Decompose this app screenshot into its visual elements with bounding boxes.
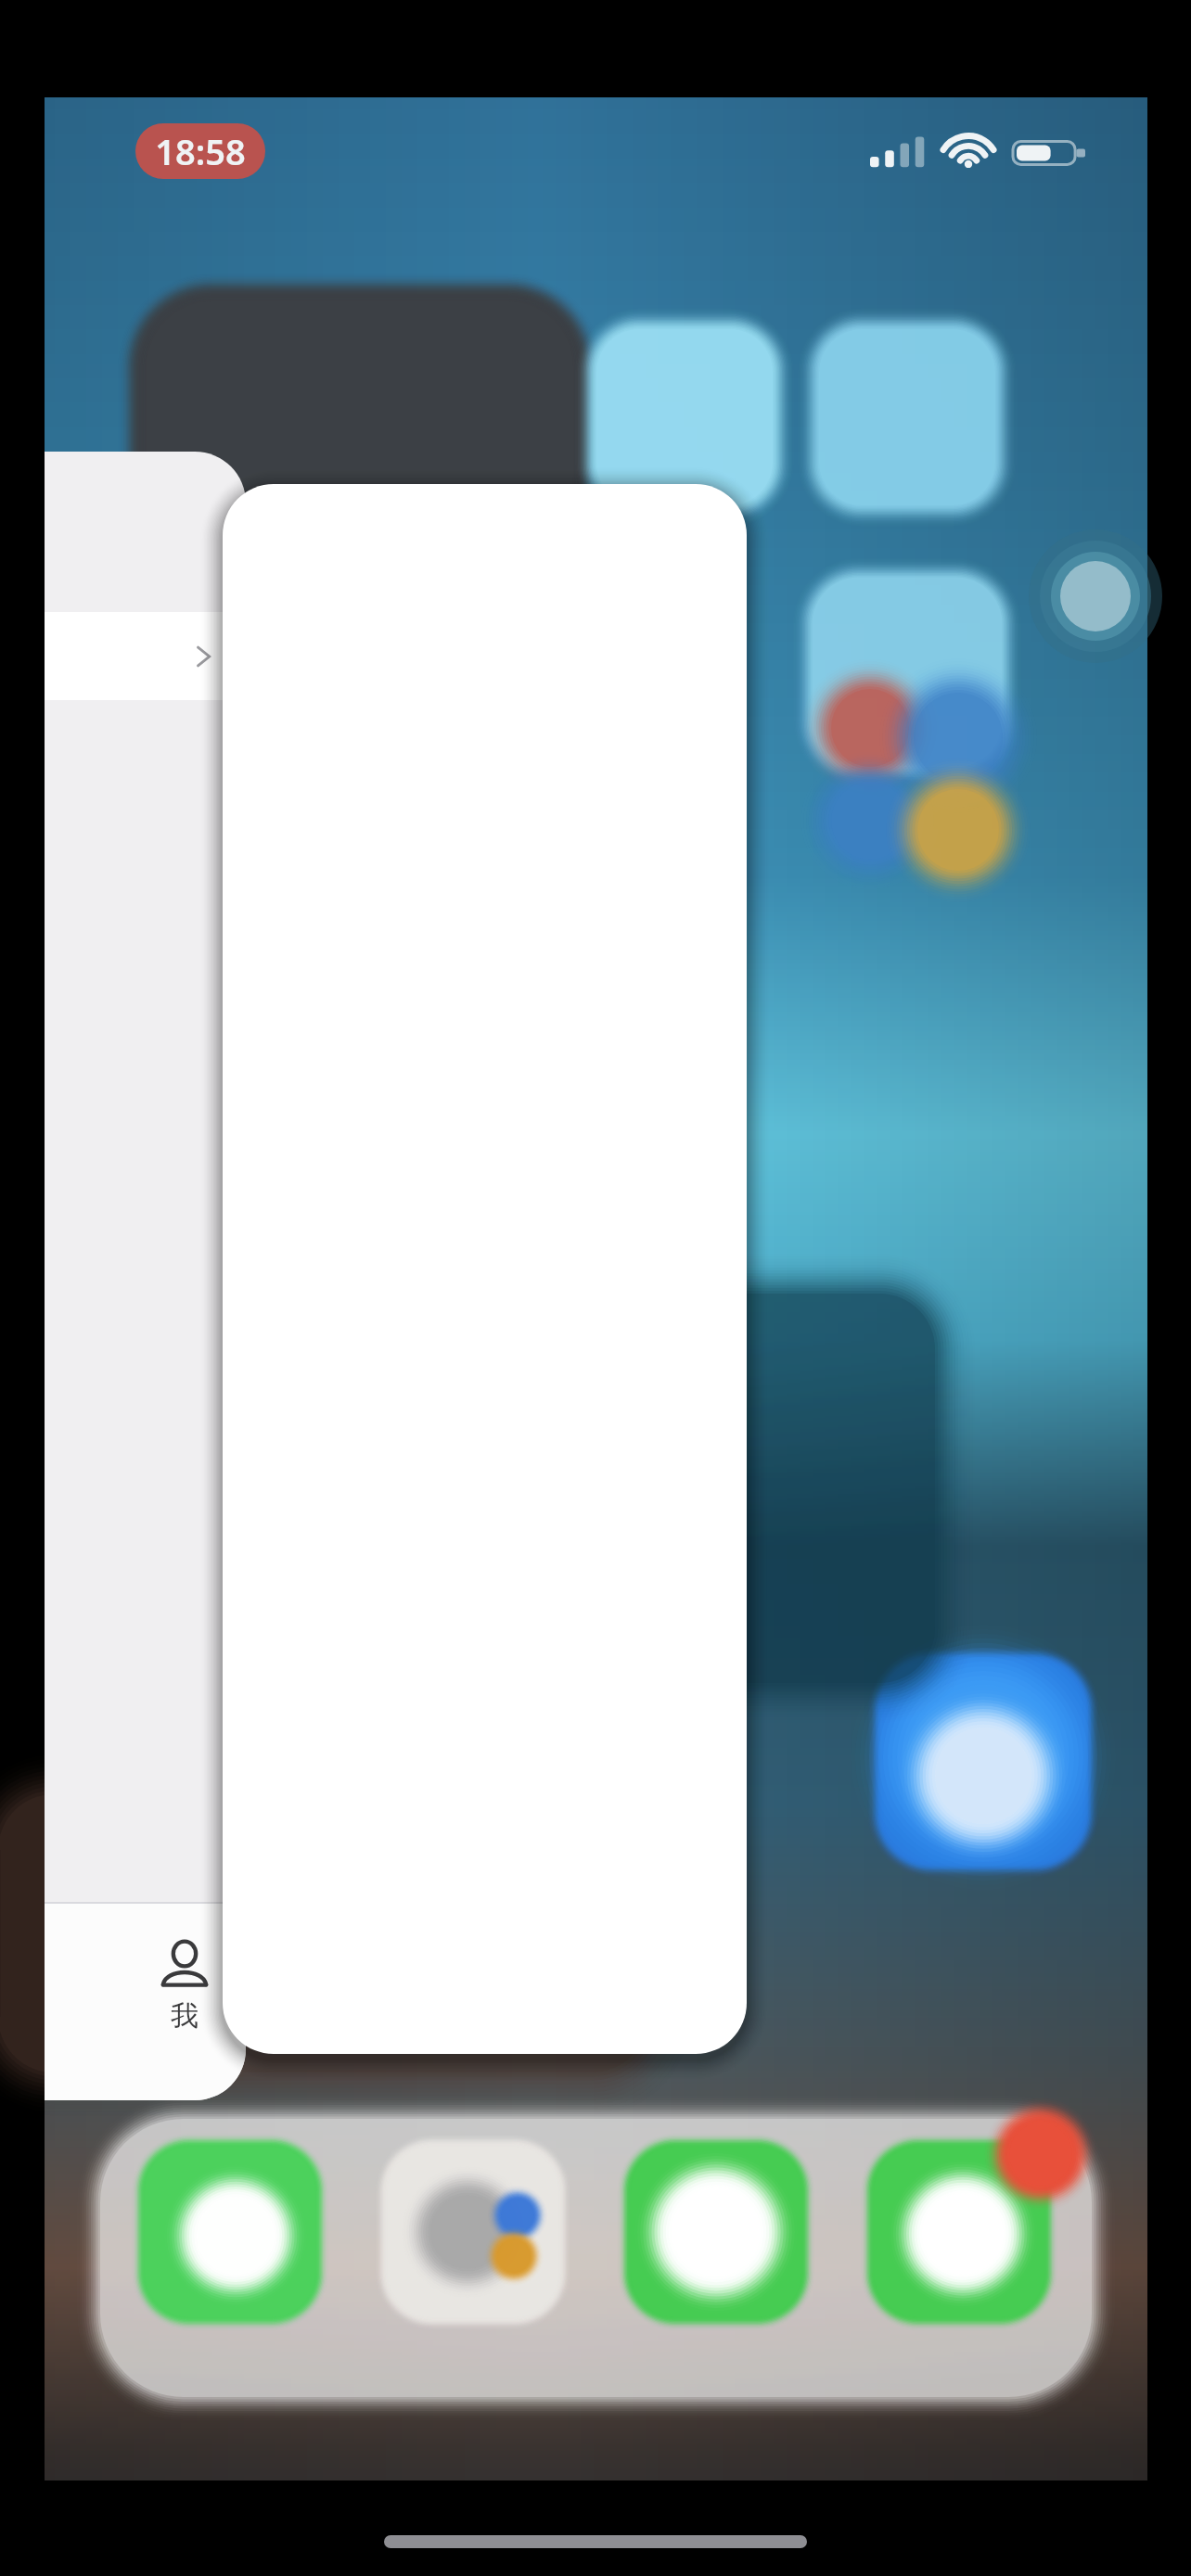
staticText: 18:58 xyxy=(155,127,246,175)
staticText: 我 xyxy=(171,1998,198,2034)
button[interactable]: 我 xyxy=(134,1937,236,2034)
button[interactable] xyxy=(45,612,246,700)
other: Status indicators xyxy=(870,133,1085,173)
button[interactable]: 我 xyxy=(45,452,246,2100)
button[interactable] xyxy=(223,484,747,2054)
button[interactable]: 18:58 xyxy=(135,123,265,179)
